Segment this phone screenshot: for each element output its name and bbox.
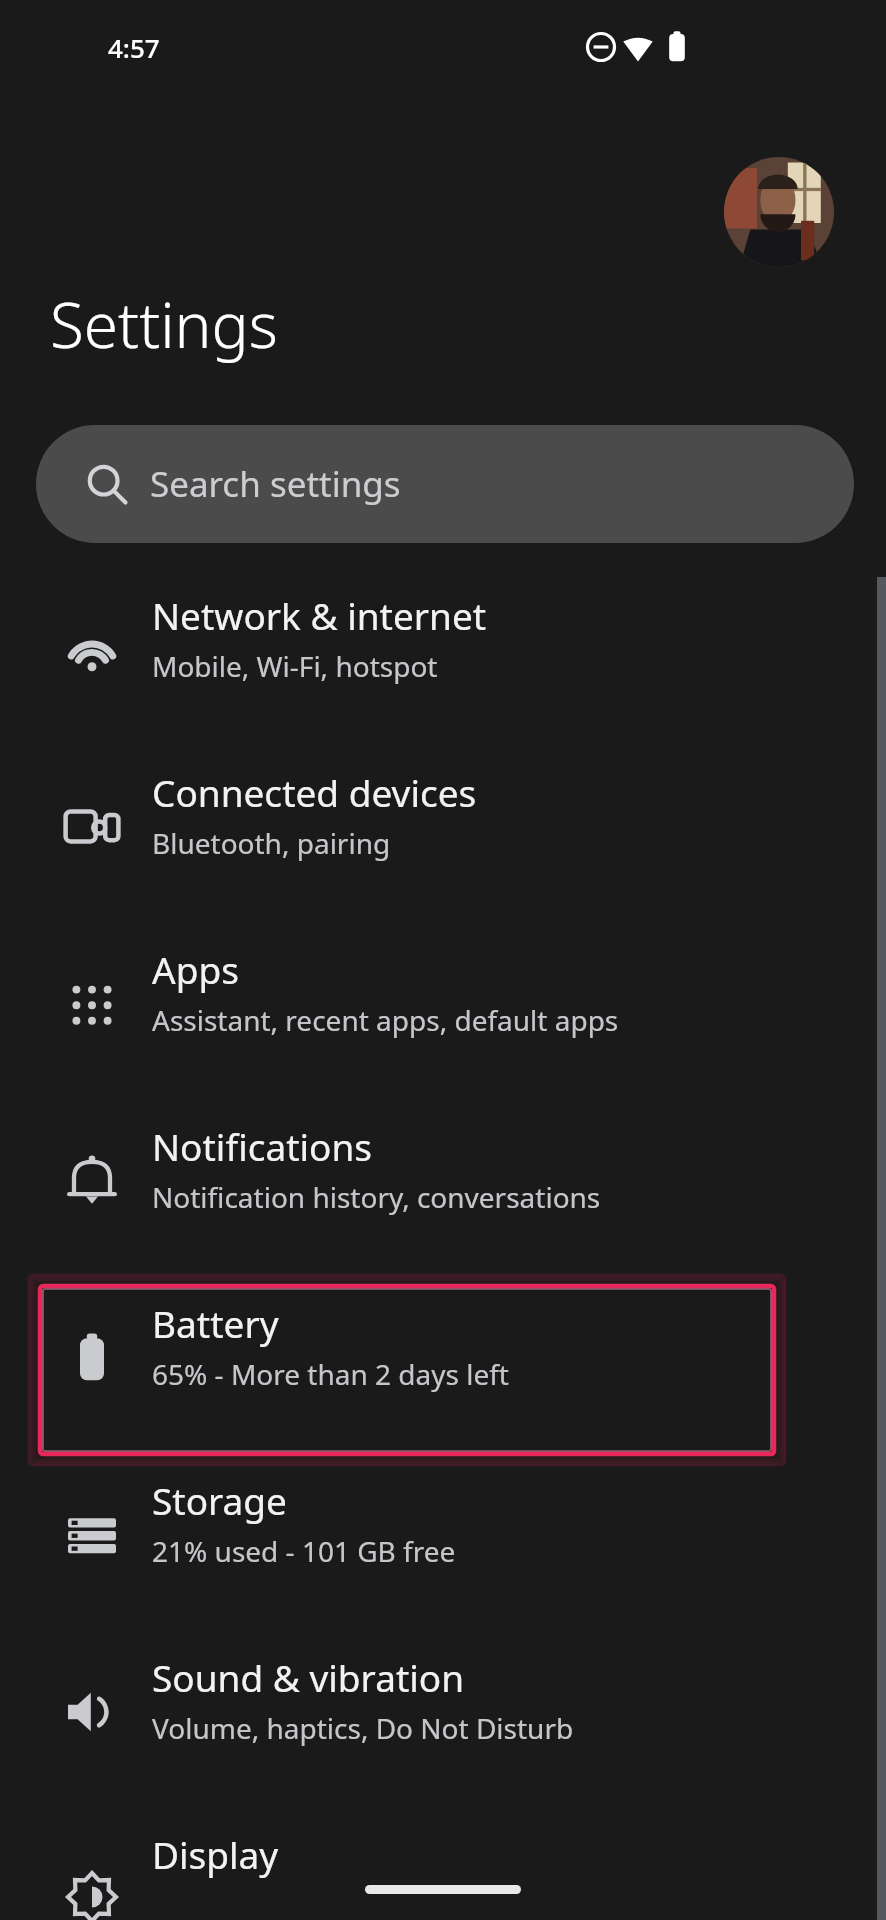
staticText: Notification history, conversations: [152, 1178, 601, 1216]
staticText: 21% used - 101 GB free: [152, 1532, 456, 1570]
button[interactable]: Connected devices: [0, 755, 886, 925]
staticText: Apps: [152, 944, 239, 994]
staticText: Bluetooth, pairing: [152, 824, 391, 862]
button[interactable]: Network & internet: [0, 578, 886, 748]
staticText: Network & internet: [152, 590, 487, 640]
staticText: Settings: [50, 282, 278, 366]
staticText: Notifications: [152, 1121, 373, 1171]
staticText: 4:57: [108, 30, 160, 65]
button[interactable]: Sound & vibration: [0, 1640, 886, 1810]
staticText: Connected devices: [152, 767, 477, 817]
staticText: Volume, haptics, Do Not Disturb: [152, 1709, 574, 1747]
button[interactable]: Battery: [0, 1286, 886, 1456]
staticText: Battery: [152, 1298, 279, 1348]
staticText: Storage: [152, 1475, 287, 1525]
staticText: Search settings: [150, 460, 401, 508]
staticText: Mobile, Wi-Fi, hotspot: [152, 647, 438, 685]
button[interactable]: Notifications: [0, 1109, 886, 1279]
staticText: Assistant, recent apps, default apps: [152, 1001, 619, 1039]
staticText: Display: [152, 1829, 279, 1879]
button[interactable]: Storage: [0, 1463, 886, 1633]
button[interactable]: Apps: [0, 932, 886, 1102]
button[interactable]: Display: [0, 1817, 886, 1920]
staticText: 65% - More than 2 days left: [152, 1355, 509, 1393]
staticText: Sound & vibration: [152, 1652, 465, 1702]
button[interactable]: Search settings: [36, 425, 854, 543]
button[interactable]: Account: [724, 157, 834, 267]
